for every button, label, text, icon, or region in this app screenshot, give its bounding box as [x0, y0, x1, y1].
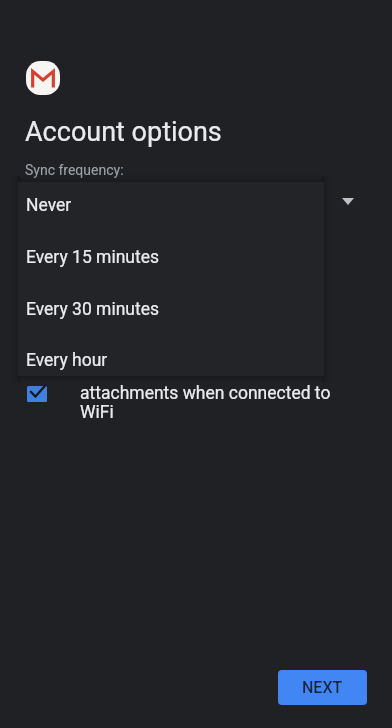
staticText: Every 30 minutes — [26, 299, 160, 320]
button[interactable]: Every 30 minutes — [18, 286, 324, 338]
staticText: Every hour — [26, 350, 108, 371]
button[interactable]: Every 15 minutes — [18, 234, 324, 286]
staticText: Account options — [25, 116, 222, 148]
button[interactable]: Notify me when email arrives — [27, 300, 340, 321]
staticText: attachments when connected to WiFi — [80, 383, 331, 422]
button[interactable]: attachments when connected to WiFi — [27, 383, 340, 422]
staticText: NEXT — [302, 678, 343, 697]
button[interactable]: Sync frequency spinner — [16, 183, 352, 231]
button[interactable]: Never — [18, 182, 324, 234]
staticText: Never — [26, 195, 72, 216]
button[interactable]: NEXT — [278, 670, 367, 705]
staticText: Sync frequency: — [25, 162, 124, 178]
staticText: Notify me when email arrives — [80, 300, 306, 321]
staticText: Every 15 minutes — [26, 247, 160, 268]
button[interactable]: Open sync frequency menu — [334, 187, 362, 215]
button[interactable]: Every hour — [18, 337, 324, 376]
